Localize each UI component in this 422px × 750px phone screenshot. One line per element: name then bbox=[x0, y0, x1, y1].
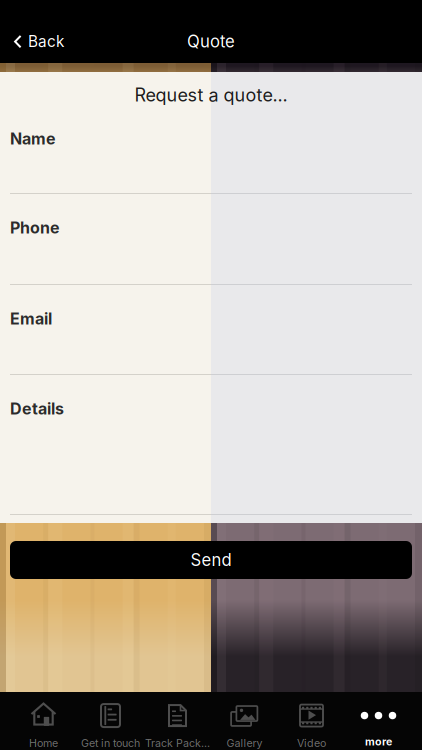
staticText: Quote bbox=[187, 31, 235, 52]
button[interactable]: Back bbox=[0, 23, 74, 60]
button[interactable]: Track Pack... bbox=[144, 692, 211, 750]
staticText: Request a quote... bbox=[134, 84, 287, 106]
staticText: Details bbox=[10, 399, 64, 418]
staticText: Back bbox=[28, 32, 64, 51]
staticText: Home bbox=[29, 736, 58, 749]
staticText: Get in touch bbox=[81, 736, 140, 749]
staticText: more bbox=[365, 735, 392, 748]
staticText: Gallery bbox=[226, 736, 262, 749]
button[interactable]: Get in touch bbox=[77, 692, 144, 750]
button[interactable]: Gallery bbox=[211, 692, 278, 750]
button[interactable]: more bbox=[345, 692, 412, 750]
staticText: Video bbox=[297, 736, 326, 749]
staticText: Name bbox=[10, 129, 56, 148]
staticText: Email bbox=[10, 309, 52, 328]
staticText: Send bbox=[190, 550, 231, 570]
staticText: Track Pack... bbox=[145, 736, 210, 749]
button[interactable]: Home bbox=[10, 692, 77, 750]
button[interactable]: Video bbox=[278, 692, 345, 750]
staticText: Phone bbox=[10, 218, 60, 237]
button[interactable]: Send bbox=[0, 541, 422, 579]
